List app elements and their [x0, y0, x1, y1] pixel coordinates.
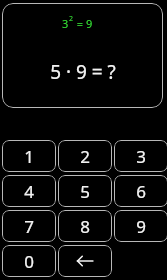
- staticText: 6: [136, 180, 146, 203]
- staticText: 2: [80, 145, 90, 168]
- staticText: 3: [62, 16, 69, 31]
- staticText: = 9: [74, 16, 93, 31]
- button[interactable]: 8: [58, 210, 112, 242]
- staticText: 7: [24, 215, 34, 238]
- staticText: 3: [136, 145, 146, 168]
- button[interactable]: 5: [58, 175, 112, 207]
- staticText: 8: [80, 215, 90, 238]
- staticText: 2: [69, 14, 74, 24]
- button[interactable]: 2: [58, 140, 112, 172]
- staticText: 4: [24, 180, 34, 203]
- staticText: 1: [24, 145, 34, 168]
- button[interactable]: 4: [2, 175, 56, 207]
- button[interactable]: 9: [114, 210, 167, 242]
- button[interactable]: 0: [2, 245, 56, 277]
- button[interactable]: 3: [114, 140, 167, 172]
- staticText: 9: [136, 215, 146, 238]
- staticText: 5 · 9 = ?: [50, 59, 116, 85]
- button[interactable]: 6: [114, 175, 167, 207]
- button[interactable]: 7: [2, 210, 56, 242]
- button[interactable]: 1: [2, 140, 56, 172]
- staticText: 5: [80, 180, 90, 203]
- button[interactable]: Backspace: [58, 245, 112, 277]
- staticText: 0: [24, 250, 34, 273]
